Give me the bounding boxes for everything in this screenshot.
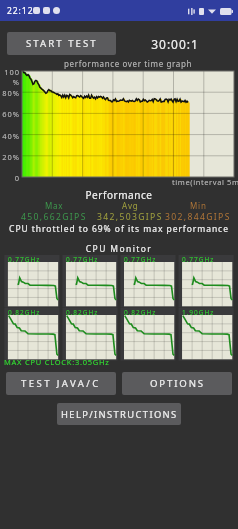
staticText: MAX CPU CLOCK:3.05GHz [4, 357, 110, 367]
staticText: 0.82GHz [66, 308, 99, 317]
button[interactable]: OPTIONS [122, 372, 232, 395]
staticText: time(interval 5min) [172, 177, 238, 187]
staticText: 0.77GHz [124, 255, 157, 264]
staticText: 0.82GHz [8, 308, 41, 317]
staticText: 0.77GHz [182, 255, 215, 264]
staticText: Avg [122, 200, 139, 211]
staticText: performance over time graph [64, 58, 193, 69]
staticText: 22:12 [7, 5, 34, 17]
button[interactable]: TEST JAVA/C [6, 372, 116, 395]
staticText: 20% [0, 152, 20, 162]
staticText: CPU Monitor [0, 243, 238, 255]
staticText: 342,503GIPS [97, 211, 163, 223]
staticText: 80% [0, 88, 20, 98]
staticText: 0.77GHz [66, 255, 99, 264]
staticText: Performance [0, 188, 238, 202]
staticText: 60% [0, 109, 20, 119]
staticText: 450,662GIPS [21, 211, 87, 223]
staticText: 302,844GIPS [165, 211, 231, 223]
staticText: TEST JAVA/C [21, 377, 101, 390]
staticText: 40% [0, 131, 20, 141]
staticText: 0.82GHz [124, 308, 157, 317]
staticText: 30:00:1 [140, 36, 210, 52]
staticText: 0 [0, 173, 20, 183]
staticText: Max [45, 200, 64, 211]
button[interactable]: HELP/INSTRUCTIONS [57, 403, 181, 425]
button[interactable]: START TEST [7, 32, 116, 55]
staticText: 0.77GHz [8, 255, 41, 264]
staticText: 100% [0, 67, 20, 87]
staticText: HELP/INSTRUCTIONS [61, 408, 178, 421]
staticText: OPTIONS [150, 377, 205, 390]
staticText: 1.90GHz [182, 308, 215, 317]
staticText: CPU throttled to 69% of its max performa… [0, 223, 238, 235]
staticText: START TEST [26, 37, 98, 50]
staticText: Min [190, 200, 207, 211]
